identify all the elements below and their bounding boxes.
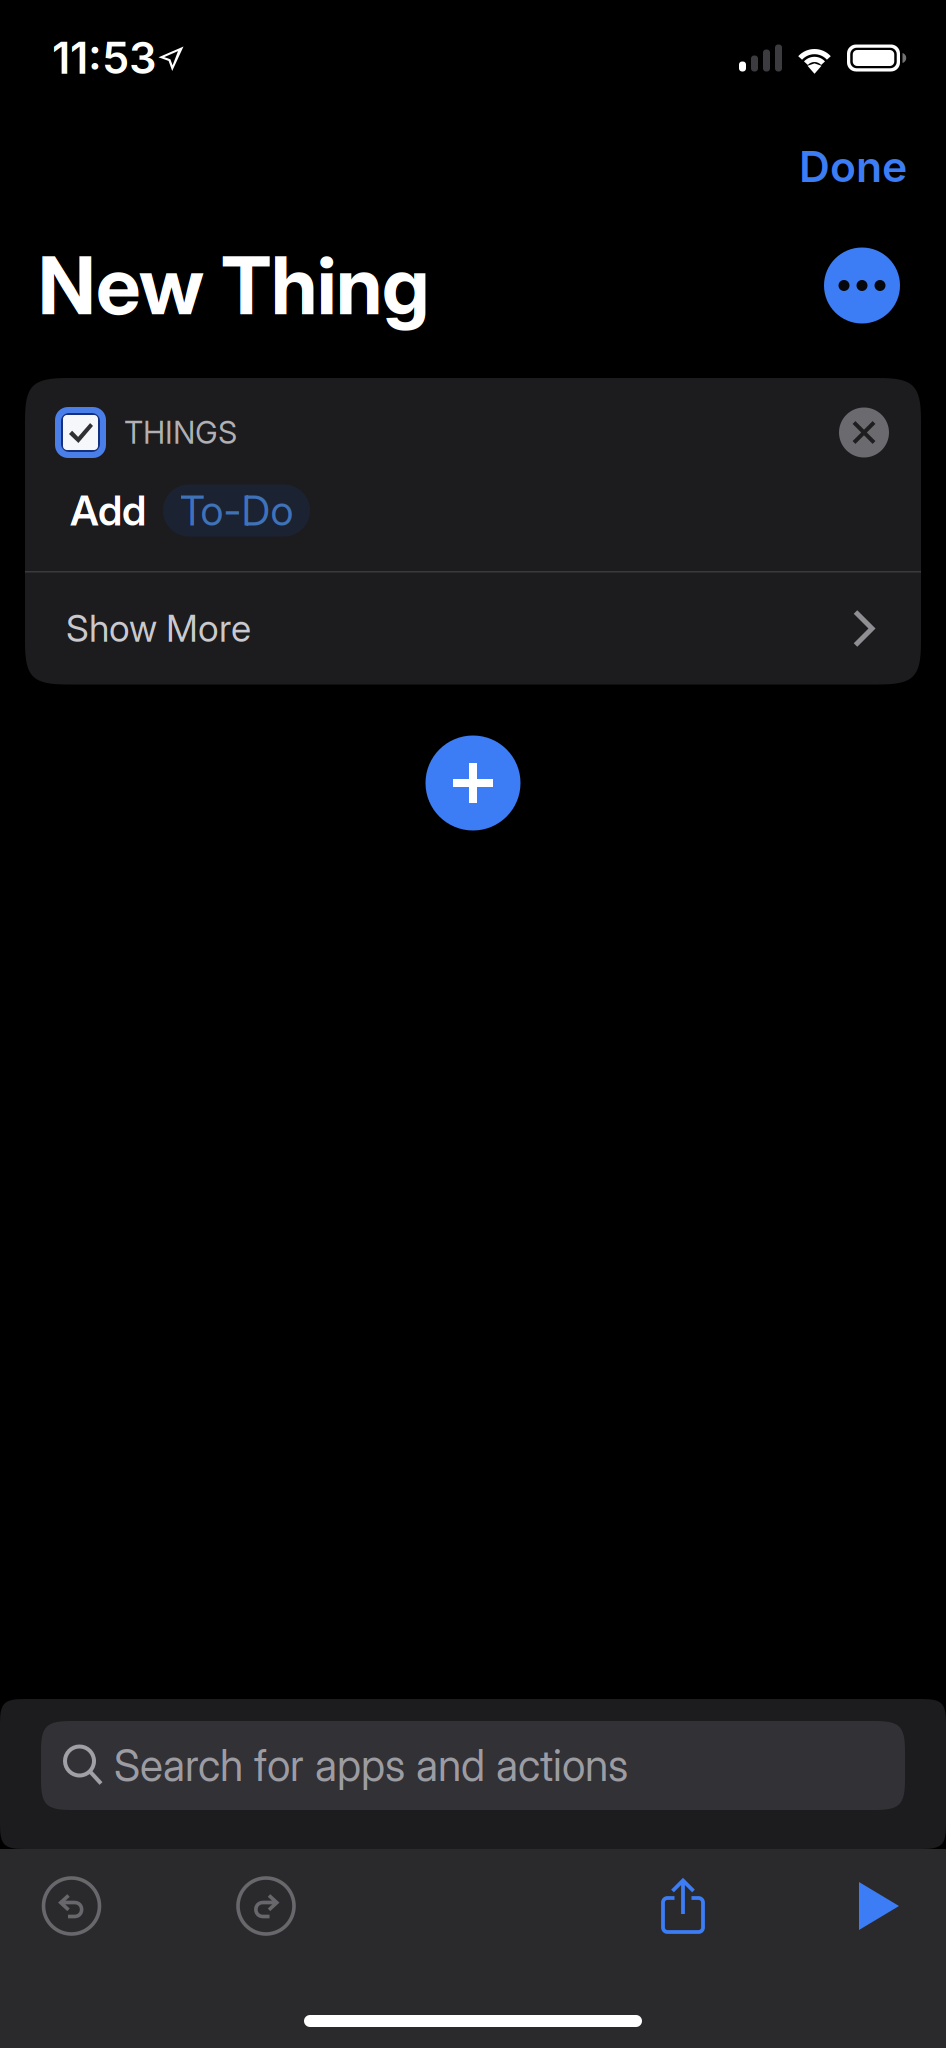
button[interactable]: More options — [824, 247, 900, 323]
button[interactable]: Done — [785, 127, 921, 206]
button[interactable]: Run shortcut — [812, 1849, 946, 1963]
staticText: To-Do — [179, 485, 293, 535]
button[interactable]: Share — [633, 1849, 733, 1963]
button[interactable]: Search for apps and actions — [41, 1721, 905, 1810]
staticText: THINGS — [124, 414, 237, 451]
staticText: Search for apps and actions — [114, 1740, 628, 1791]
button[interactable]: Remove action — [839, 407, 889, 457]
staticText: 11:53 — [52, 32, 157, 84]
button[interactable]: Show More — [25, 572, 921, 684]
button[interactable]: Redo — [143, 1849, 389, 1963]
staticText: Add — [70, 485, 146, 535]
button[interactable]: Add action — [425, 735, 520, 830]
staticText: Show More — [66, 606, 251, 651]
staticText: Done — [799, 141, 907, 192]
button[interactable]: Undo — [0, 1849, 143, 1963]
staticText: New Thing — [38, 237, 429, 333]
